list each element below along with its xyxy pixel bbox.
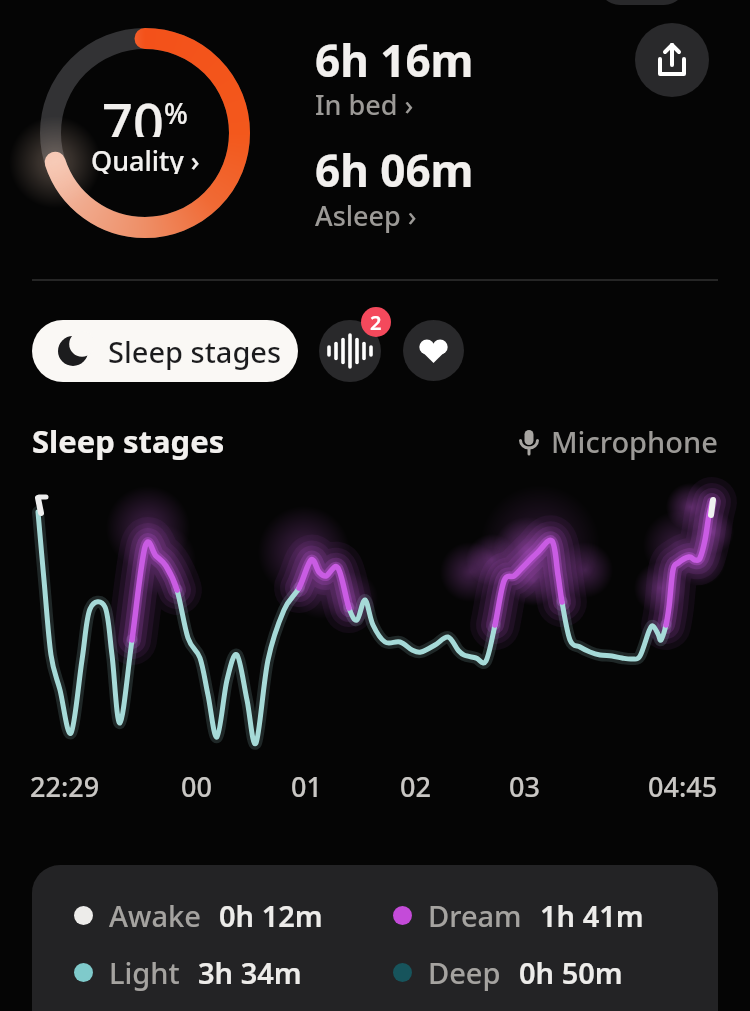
button[interactable] [635, 23, 709, 97]
staticText: 70 [102, 85, 164, 137]
staticText: Sleep stages [32, 420, 225, 462]
staticText: Quality › [91, 142, 200, 174]
button[interactable]: Asleep › [315, 197, 417, 234]
staticText: Asleep › [315, 197, 417, 234]
staticText: % [164, 94, 188, 132]
staticText: 00 [181, 768, 212, 805]
button[interactable] [319, 320, 381, 382]
staticText: 01 [291, 768, 322, 805]
button[interactable]: Microphone [515, 422, 718, 461]
staticText: 0h 50m [519, 953, 623, 992]
button[interactable]: Dream [393, 896, 644, 935]
staticText: Awake [109, 896, 201, 935]
button[interactable]: Deep [393, 953, 623, 992]
staticText: 6h 06m [315, 140, 474, 200]
staticText: Dream [428, 896, 522, 935]
staticText: Light [109, 953, 180, 992]
staticText: 1h 41m [540, 896, 644, 935]
staticText: 6h 16m [315, 30, 474, 90]
staticText: 22:29 [30, 768, 100, 805]
staticText: 0h 12m [219, 896, 323, 935]
button[interactable]: Quality › [45, 142, 245, 174]
staticText: 03 [509, 768, 540, 805]
button[interactable]: Sleep stages [32, 320, 298, 382]
staticText: Sleep stages [108, 332, 282, 371]
button[interactable]: Awake [74, 896, 323, 935]
staticText: Deep [428, 953, 501, 992]
button[interactable]: Light [74, 953, 302, 992]
button[interactable] [403, 320, 464, 381]
staticText: 04:45 [648, 768, 718, 805]
staticText: 3h 34m [198, 953, 302, 992]
staticText: Microphone [551, 422, 718, 461]
staticText: In bed › [315, 86, 414, 123]
staticText: 2 [370, 309, 382, 336]
button[interactable]: In bed › [315, 86, 414, 123]
staticText: 02 [400, 768, 431, 805]
